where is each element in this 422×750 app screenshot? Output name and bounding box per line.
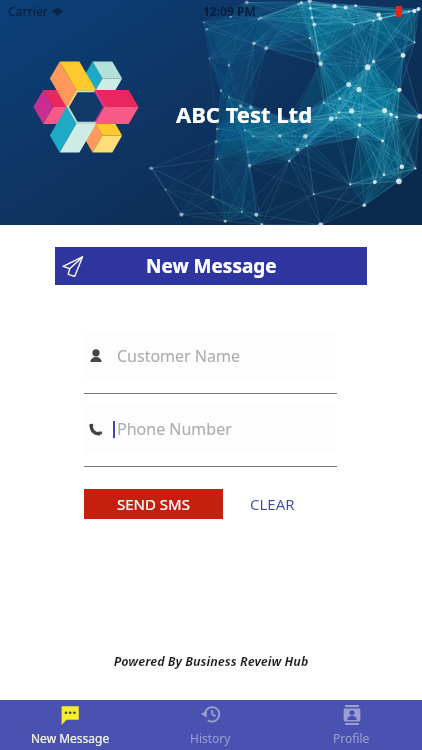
other: History: [200, 704, 222, 726]
staticText: Powered By Business Reveiw Hub: [0, 653, 422, 670]
button[interactable]: Profile: [281, 700, 422, 750]
staticText: New Message: [31, 730, 110, 746]
staticText: New Message: [146, 253, 277, 279]
other: Profile: [341, 704, 363, 726]
staticText: History: [190, 730, 231, 746]
other: New Message: [59, 704, 81, 726]
button[interactable]: Customer Name: [84, 332, 337, 380]
staticText: Phone Number: [117, 418, 232, 440]
staticText: Profile: [333, 730, 370, 746]
other: Send: [62, 255, 84, 277]
button[interactable]: CLEAR: [241, 489, 304, 519]
button[interactable]: SEND SMS: [84, 489, 223, 519]
button[interactable]: History: [140, 700, 281, 750]
button[interactable]: Phone Number: [84, 405, 337, 453]
button[interactable]: Send: [55, 247, 367, 285]
staticText: Customer Name: [117, 345, 240, 367]
staticText: 12:09 PM: [203, 3, 256, 19]
staticText: Carrier: [8, 3, 48, 19]
button[interactable]: New Message: [0, 700, 140, 750]
staticText: CLEAR: [250, 494, 295, 514]
staticText: ABC Test Ltd: [176, 99, 313, 129]
staticText: SEND SMS: [117, 494, 190, 514]
